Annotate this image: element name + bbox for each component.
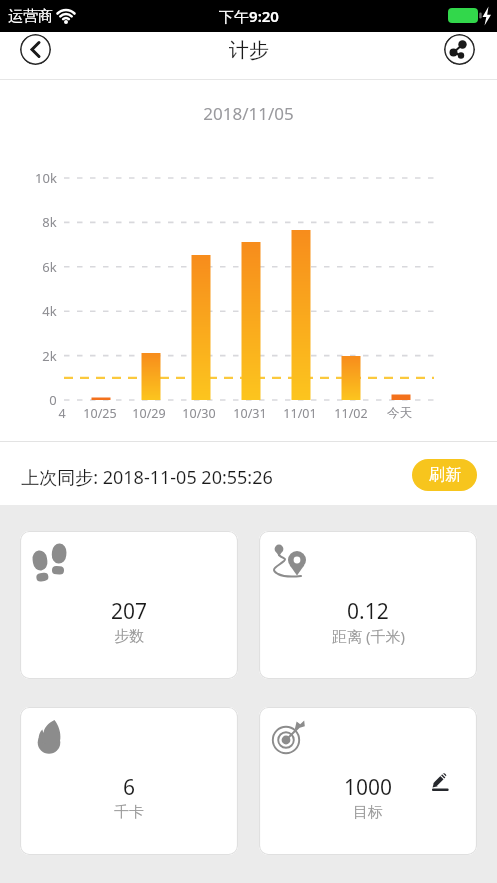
staticText: 运营商 xyxy=(8,7,53,26)
staticText: 距离 (千米) xyxy=(332,626,405,646)
staticText: 4k xyxy=(42,302,57,320)
staticText: 10/31 xyxy=(233,405,267,422)
staticText: 下午9:20 xyxy=(219,6,279,26)
staticText: 6 xyxy=(123,773,136,799)
staticText: 0 xyxy=(49,391,57,409)
staticText: 11/01 xyxy=(283,405,317,422)
button[interactable]: 1000 xyxy=(259,707,477,855)
staticText: 10k xyxy=(35,169,57,187)
staticText: 11/02 xyxy=(334,405,368,422)
staticText: 今天 xyxy=(387,405,412,421)
button[interactable] xyxy=(444,34,475,65)
button[interactable]: 6 xyxy=(20,707,238,855)
staticText: 上次同步: 2018-11-05 20:55:26 xyxy=(21,465,273,490)
staticText: 10/29 xyxy=(132,405,166,422)
staticText: 6k xyxy=(42,258,57,276)
staticText: 计步 xyxy=(229,38,269,63)
button[interactable]: 207 xyxy=(20,531,238,679)
button[interactable]: 0.12 xyxy=(259,531,477,679)
staticText: 207 xyxy=(111,597,148,623)
staticText: 千卡 xyxy=(114,803,144,822)
staticText: 4 xyxy=(58,405,66,422)
staticText: 8k xyxy=(42,213,57,231)
button[interactable] xyxy=(20,34,51,65)
staticText: 步数 xyxy=(114,627,144,646)
staticText: 2k xyxy=(42,347,57,365)
button[interactable]: 刷新 xyxy=(412,459,477,491)
staticText: 目标 xyxy=(353,803,383,822)
staticText: 10/25 xyxy=(83,405,117,422)
staticText: 刷新 xyxy=(429,465,461,485)
staticText: 2018/11/05 xyxy=(203,102,294,124)
staticText: 10/30 xyxy=(182,405,216,422)
staticText: 1000 xyxy=(344,773,393,799)
staticText: 0.12 xyxy=(347,597,389,623)
